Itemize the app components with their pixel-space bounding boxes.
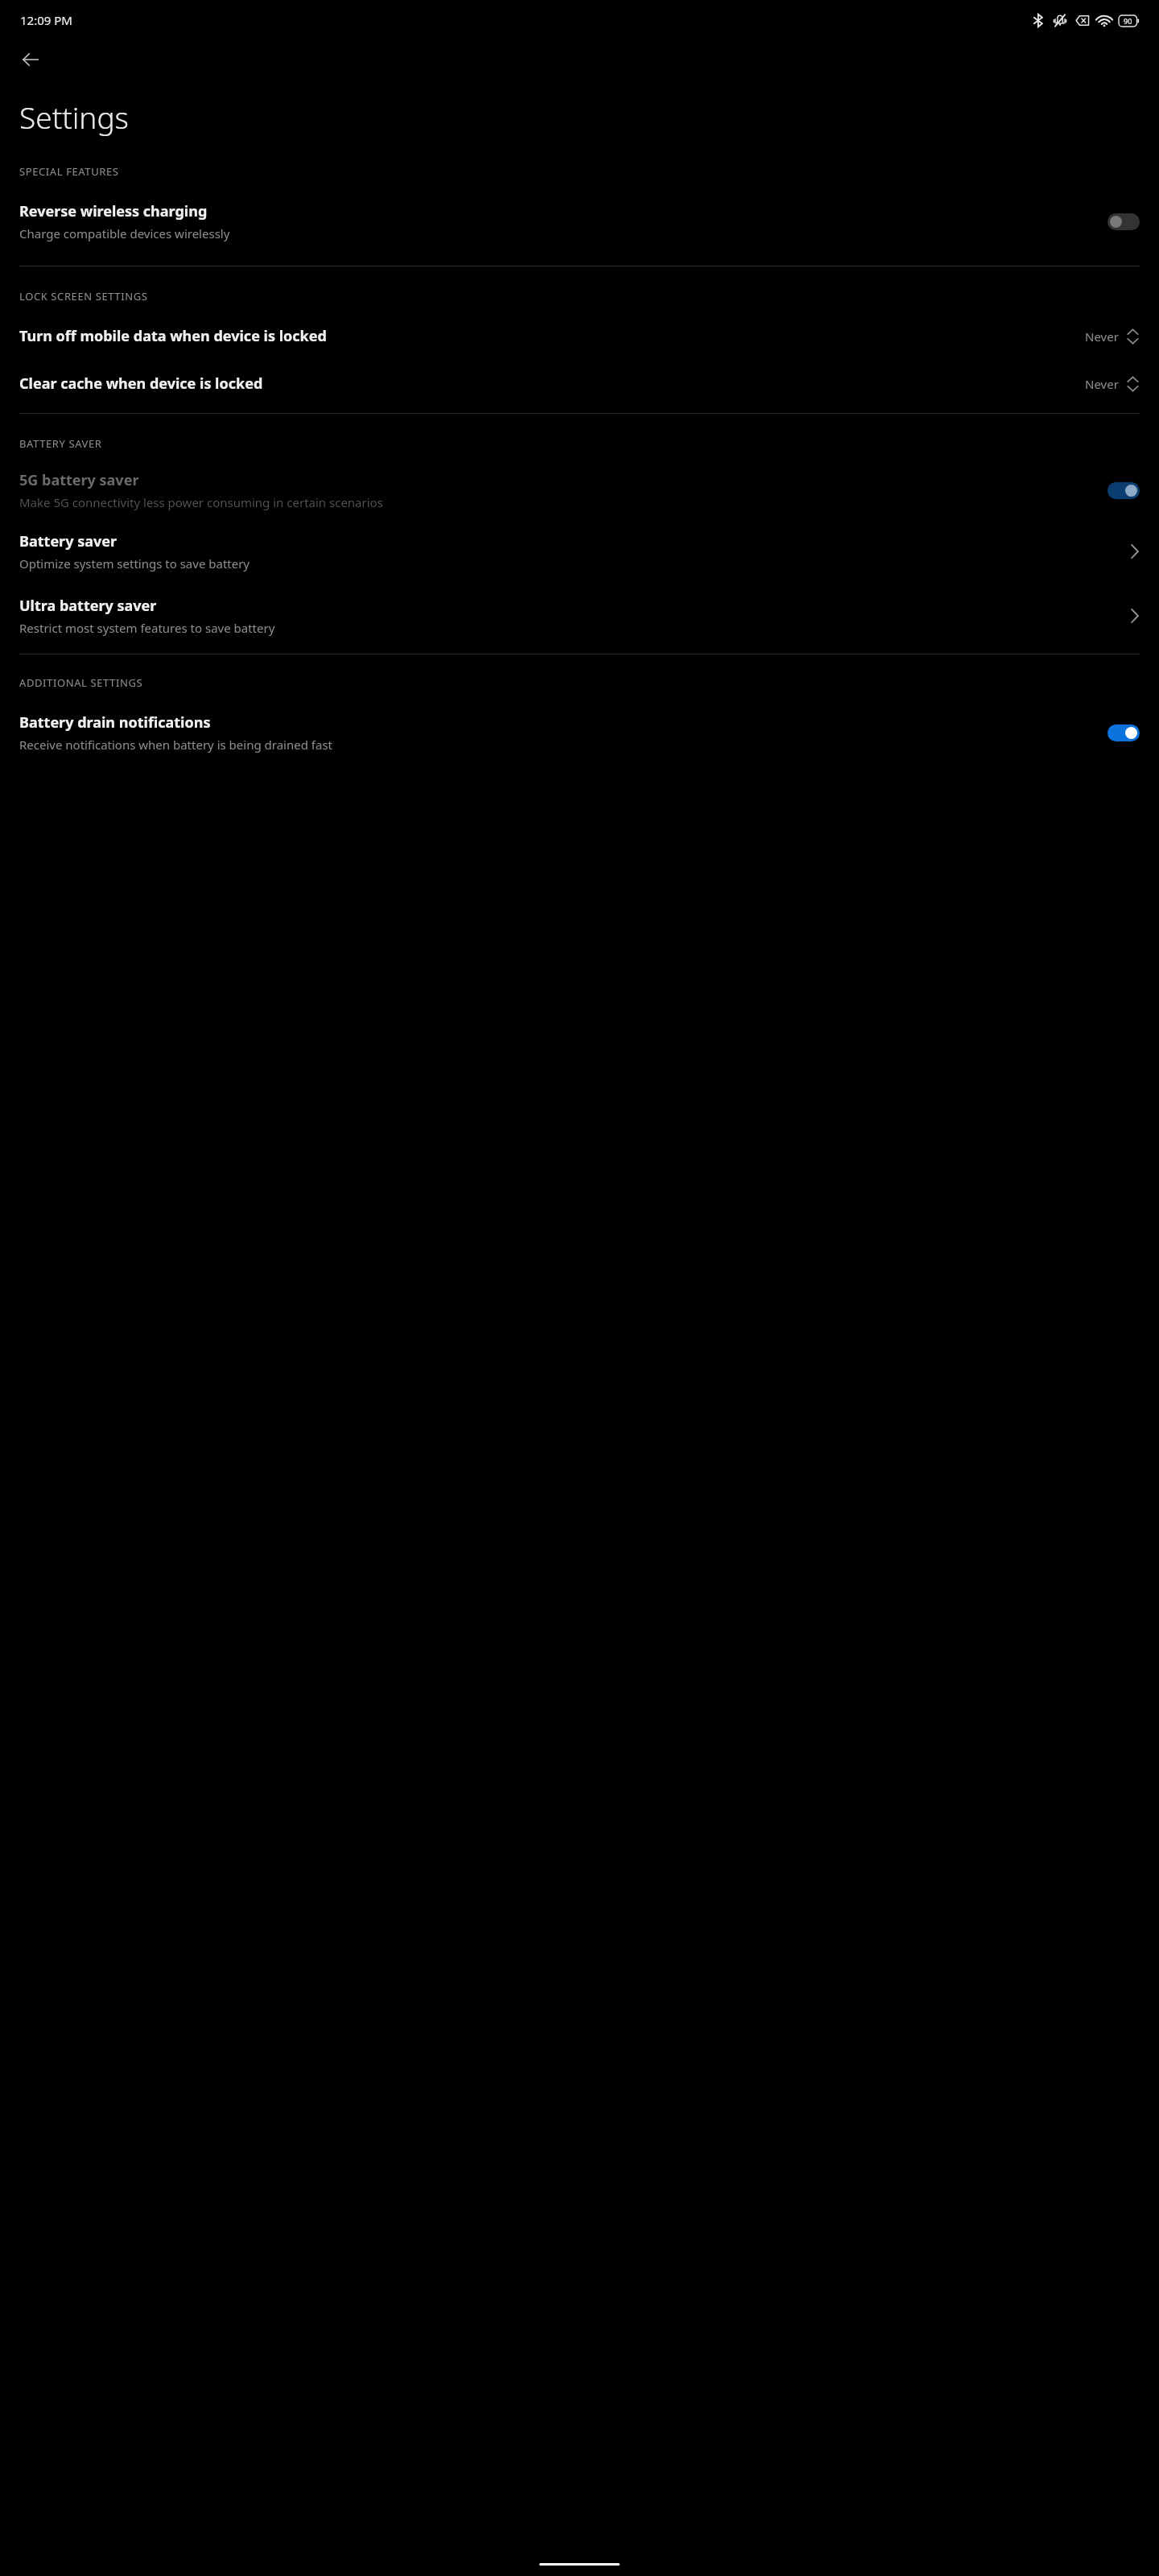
button[interactable]: Ultra battery saver [0, 592, 1159, 639]
staticText: Charge compatible devices wirelessly [19, 225, 230, 242]
button[interactable]: 5G battery saver [0, 467, 1159, 514]
button[interactable]: Turn off mobile data when device is lock… [0, 321, 1159, 351]
button[interactable]: Clear cache when device is locked [0, 369, 1159, 398]
staticText: Optimize system settings to save battery [19, 555, 250, 572]
staticText: ADDITIONAL SETTINGS [19, 675, 143, 690]
button[interactable]: Battery saver [0, 528, 1159, 575]
staticText: Reverse wireless charging [19, 201, 208, 221]
staticText: Receive notifications when battery is be… [19, 737, 332, 753]
button[interactable]: Battery drain notifications [0, 709, 1159, 756]
staticText: 90 [1124, 16, 1132, 26]
staticText: 5G battery saver [19, 470, 139, 490]
staticText: Clear cache when device is locked [19, 374, 1075, 394]
staticText: SPECIAL FEATURES [19, 164, 119, 179]
staticText: Ultra battery saver [19, 596, 157, 616]
staticText: Battery saver [19, 531, 118, 551]
staticText: Settings [19, 97, 129, 137]
button[interactable]: Toggle [1107, 482, 1140, 499]
staticText: LOCK SCREEN SETTINGS [19, 289, 148, 303]
button[interactable]: Toggle [1107, 213, 1140, 230]
staticText: Turn off mobile data when device is lock… [19, 326, 1075, 346]
staticText: 12:09 PM [20, 12, 72, 28]
staticText: Battery drain notifications [19, 712, 211, 733]
button[interactable]: Back [11, 40, 50, 79]
staticText: Restrict most system features to save ba… [19, 620, 275, 636]
staticText: Never [1085, 376, 1119, 392]
button[interactable]: Reverse wireless charging [0, 198, 1159, 245]
button[interactable]: Toggle [1107, 724, 1140, 741]
staticText: BATTERY SAVER [19, 436, 102, 451]
staticText: Make 5G connectivity less power consumin… [19, 494, 383, 510]
staticText: Never [1085, 328, 1119, 345]
